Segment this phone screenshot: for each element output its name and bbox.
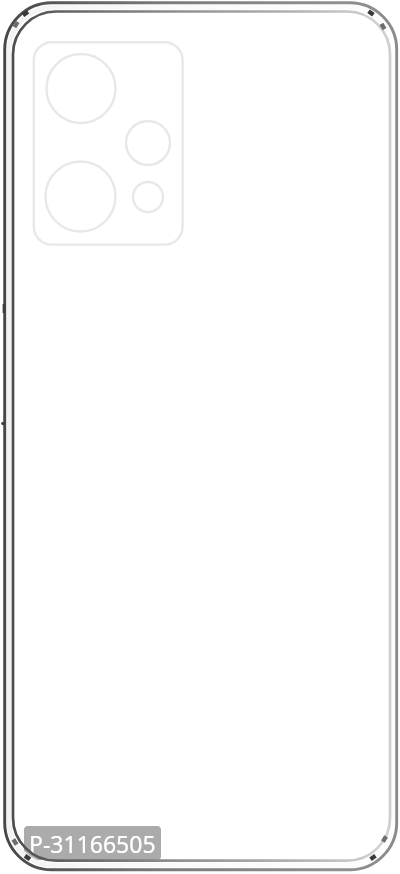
- button[interactable]: P-31166505: [24, 826, 161, 860]
- button[interactable]: Camera cut-out detail: [34, 42, 184, 242]
- staticText: P-31166505: [29, 828, 156, 859]
- button[interactable]: Transparent back cover product photo: [0, 0, 400, 874]
